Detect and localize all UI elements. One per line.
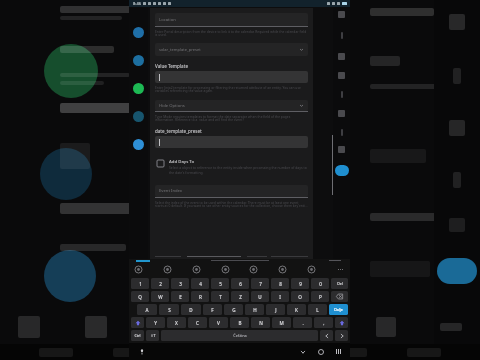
button[interactable]: Shift [131, 317, 144, 328]
button[interactable]: O [291, 291, 309, 302]
button[interactable]: V [209, 317, 228, 328]
button[interactable]: K [287, 304, 306, 315]
staticText: H [253, 307, 257, 313]
staticText: 1 [139, 281, 142, 287]
button[interactable]: H [245, 304, 264, 315]
staticText: B [238, 320, 242, 326]
staticText: Y [154, 320, 157, 326]
button[interactable]: C [188, 317, 207, 328]
button[interactable]: Dalje [329, 304, 348, 315]
staticText: N [259, 320, 263, 326]
button[interactable]: U [251, 291, 269, 302]
button[interactable]: 2 [151, 278, 169, 289]
button[interactable]: Add Days To [155, 157, 308, 176]
button[interactable]: Del [331, 278, 348, 289]
button[interactable]: Recent apps [334, 347, 343, 356]
button[interactable]: ⇧T [146, 330, 159, 341]
button[interactable]: X [167, 317, 186, 328]
button[interactable]: 7 [251, 278, 269, 289]
button[interactable]: Cursor right [335, 330, 348, 341]
button[interactable]: 5 [211, 278, 229, 289]
staticText: 3 [179, 281, 182, 287]
button[interactable]: Backspace [331, 291, 348, 302]
button[interactable]: G [224, 304, 243, 315]
button[interactable]: Home [316, 347, 325, 356]
button[interactable]: Čeština [161, 330, 318, 341]
button[interactable]: More options [335, 264, 346, 275]
staticText: Del [337, 281, 343, 286]
button[interactable]: A [137, 304, 157, 315]
staticText: I [279, 294, 281, 300]
button[interactable]: Keyboard tool 1 [133, 264, 144, 275]
staticText: Select a object to reference to the enti… [169, 165, 308, 175]
button[interactable]: Voice input [137, 347, 147, 357]
button[interactable]: Z [231, 291, 249, 302]
staticText: M [279, 320, 284, 326]
staticText: O [298, 294, 302, 300]
staticText: solar_template_preset [159, 47, 201, 52]
staticText: R [199, 294, 202, 300]
button[interactable]: 9 [291, 278, 309, 289]
staticText: 6 [239, 281, 242, 287]
button[interactable]: solar_template_preset [155, 43, 308, 56]
button[interactable]: Q [131, 291, 149, 302]
button[interactable]: Keyboard tool 6 [277, 264, 288, 275]
button[interactable]: T [211, 291, 229, 302]
button[interactable]: S [159, 304, 179, 315]
button[interactable]: F [203, 304, 222, 315]
button[interactable]: R [191, 291, 209, 302]
button[interactable]: 8 [271, 278, 289, 289]
button[interactable]: 1 [131, 278, 149, 289]
staticText: S [168, 307, 171, 313]
button[interactable]: Keyboard tool 7 [306, 264, 317, 275]
staticText: D [189, 307, 193, 313]
staticText: Dalje [334, 307, 343, 312]
button[interactable]: Action button [335, 165, 349, 176]
staticText: Type Mode requires templates to format t… [155, 114, 308, 122]
button[interactable]: Keyboard tool 5 [248, 264, 259, 275]
staticText: 9 [299, 281, 302, 287]
staticText: F [211, 307, 214, 313]
button[interactable]: J [266, 304, 285, 315]
button[interactable]: Y [146, 317, 165, 328]
staticText: C [196, 320, 199, 326]
button[interactable]: 3 [171, 278, 189, 289]
button[interactable] [155, 136, 308, 148]
button[interactable]: 6 [231, 278, 249, 289]
staticText: Add Days To [169, 158, 195, 164]
button[interactable]: Keyboard tool 3 [191, 264, 202, 275]
staticText: . [302, 320, 304, 326]
staticText: Enter Jinja2 template for processing or … [155, 85, 308, 93]
button[interactable]: Keyboard tool 2 [162, 264, 173, 275]
button[interactable]: Location [155, 13, 308, 26]
staticText: Ctrl [134, 333, 141, 338]
button[interactable]: , [314, 317, 333, 328]
button[interactable]: W [151, 291, 169, 302]
staticText: Q [138, 294, 142, 300]
button[interactable]: I [271, 291, 289, 302]
button[interactable]: D [181, 304, 201, 315]
button[interactable]: B [230, 317, 249, 328]
button[interactable]: 4 [191, 278, 209, 289]
staticText: L [316, 307, 319, 313]
button[interactable]: Ctrl [131, 330, 144, 341]
button[interactable]: N [251, 317, 270, 328]
staticText: 8:46 [133, 1, 141, 6]
staticText: 2 [159, 281, 162, 287]
button[interactable]: P [311, 291, 329, 302]
button[interactable]: M [272, 317, 291, 328]
staticText: Hide Options [159, 103, 185, 109]
button[interactable]: E [171, 291, 189, 302]
button[interactable]: Hide Options [155, 100, 308, 111]
button[interactable] [155, 71, 308, 83]
button[interactable]: Keyboard tool 4 [220, 264, 231, 275]
button[interactable]: Back [298, 347, 307, 356]
button[interactable]: Event Index [155, 185, 308, 197]
button[interactable]: . [293, 317, 312, 328]
button[interactable]: L [308, 304, 327, 315]
staticText: Location [159, 17, 176, 23]
button[interactable]: 0 [311, 278, 329, 289]
button[interactable]: Shift [335, 317, 348, 328]
button[interactable]: Cursor left [320, 330, 333, 341]
staticText: Enter Portal description from the device… [155, 29, 308, 37]
